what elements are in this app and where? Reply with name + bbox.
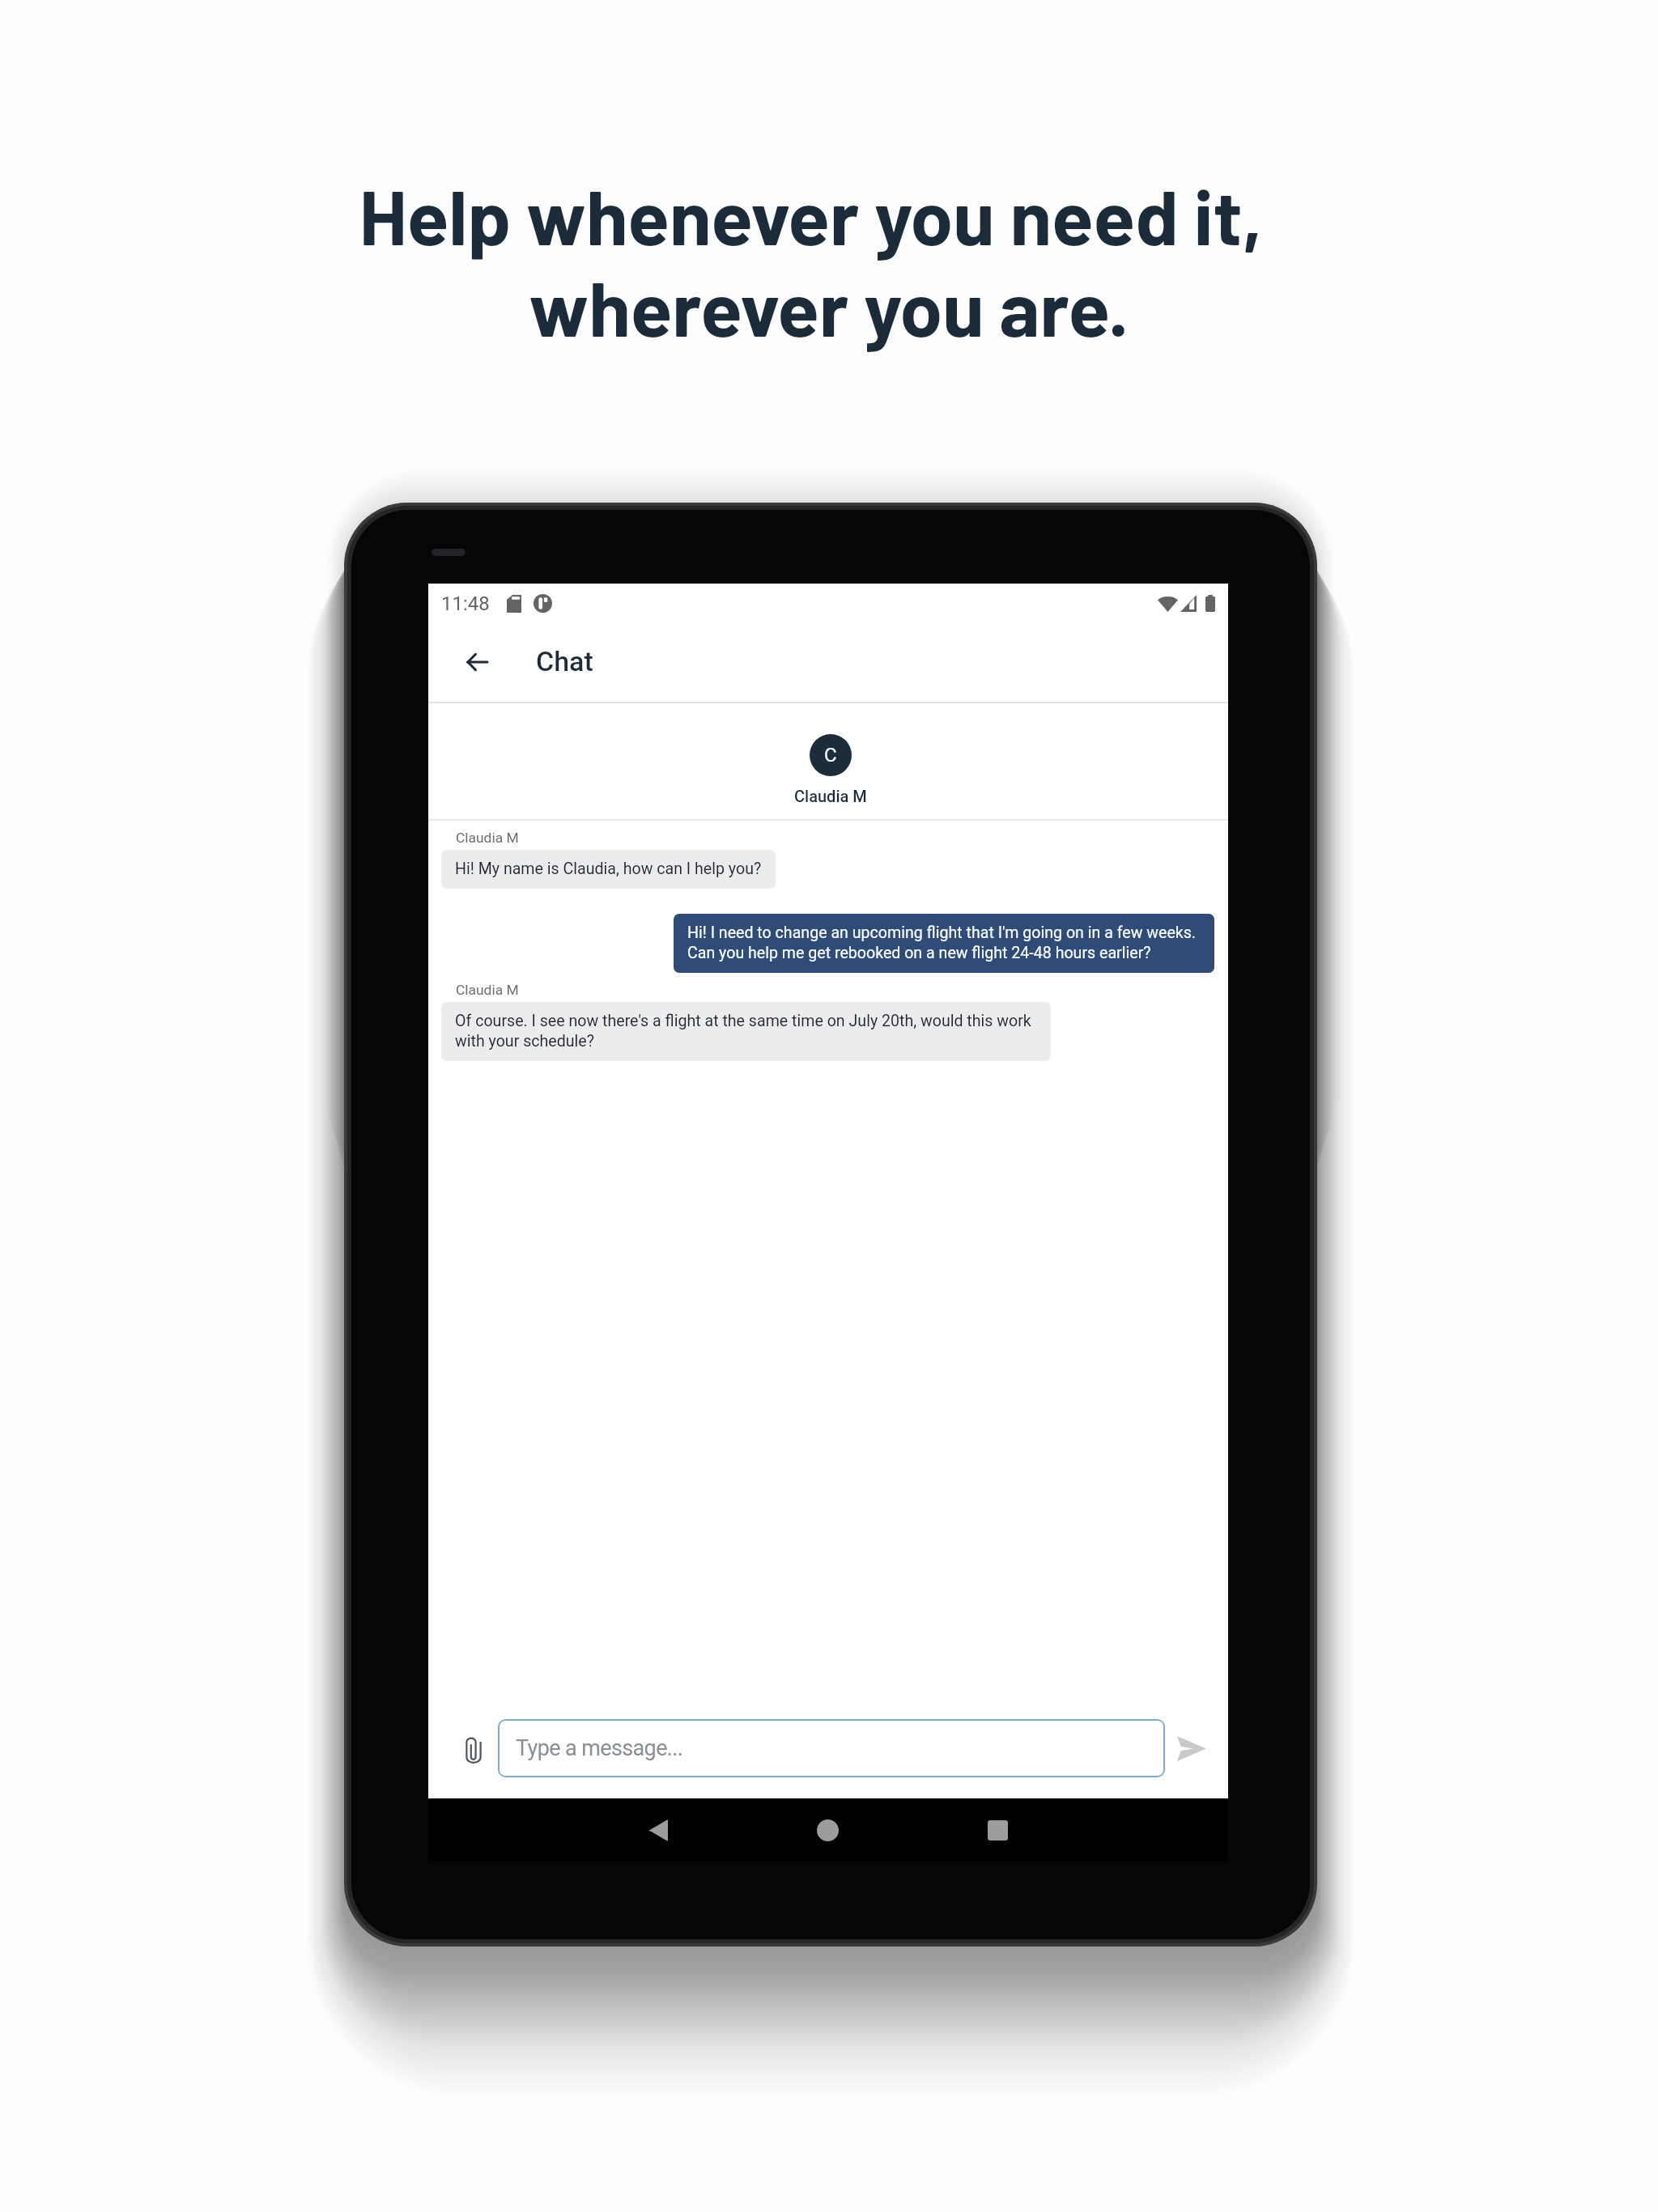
button[interactable]: Back [449,635,504,690]
button[interactable]: Hi! My name is Claudia, how can I help y… [441,850,776,889]
staticText: Hi! My name is Claudia, how can I help y… [455,860,762,878]
button[interactable]: Recent apps [971,1804,1023,1856]
button[interactable]: Back [632,1804,684,1856]
staticText: Help whenever you need it, [359,168,1263,260]
staticText: Claudia M [794,787,867,805]
button[interactable]: Type a message... [498,1719,1165,1777]
staticText: 11:48 [441,592,490,615]
button[interactable]: Home [801,1804,853,1856]
staticText: Type a message... [516,1735,683,1761]
staticText: Claudia M [456,982,519,998]
staticText: C [824,744,837,766]
button[interactable]: Of course. I see now there's a flight at… [441,1002,1051,1061]
staticText: Claudia M [456,830,519,846]
staticText: Of course. I see now there's a flight at… [455,1012,1037,1051]
button[interactable]: Send [1167,1723,1217,1773]
staticText: Hi! I need to change an upcoming flight … [687,923,1201,962]
staticText: Chat [536,645,593,677]
button[interactable]: Attach file [448,1725,500,1777]
button[interactable]: Hi! I need to change an upcoming flight … [674,914,1214,973]
staticText: wherever you are. [529,260,1129,351]
button[interactable]: Claudia M profile [810,734,852,776]
